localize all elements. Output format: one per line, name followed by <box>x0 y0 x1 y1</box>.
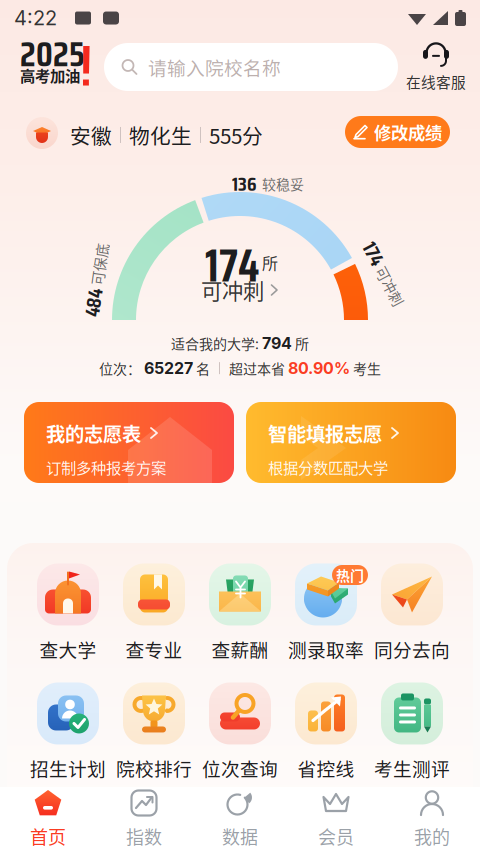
button[interactable]: 首页 <box>0 787 96 853</box>
staticText: 查大学 <box>39 635 96 662</box>
button[interactable]: 在线客服 <box>405 40 467 92</box>
button[interactable]: 省控线 <box>283 685 369 779</box>
staticText: 热门 <box>336 565 364 585</box>
staticText: 安徽 <box>70 120 112 150</box>
staticText: 考生 <box>350 358 381 378</box>
staticText: 可冲刺 <box>376 264 418 284</box>
staticText: 在线客服 <box>406 71 466 92</box>
button[interactable]: 我的 <box>384 787 480 853</box>
button[interactable]: 会员 <box>288 787 384 853</box>
staticText: 555分 <box>209 120 263 150</box>
staticText: 智能填报志愿 <box>268 419 382 447</box>
staticText: 80.90% <box>288 358 350 378</box>
staticText: 较稳妥 <box>262 174 304 194</box>
button[interactable]: 查专业 <box>111 566 197 660</box>
staticText: 位次： <box>99 358 144 378</box>
button[interactable]: 考生测评 <box>369 685 455 779</box>
button[interactable]: 招生计划 <box>25 685 111 779</box>
staticText: 查薪酬 <box>211 635 268 662</box>
button[interactable]: 指数 <box>96 787 192 853</box>
staticText: 指数 <box>126 823 162 849</box>
button[interactable]: 请输入院校名称 <box>104 43 398 91</box>
button[interactable]: 位次查询 <box>197 685 283 779</box>
staticText: 适合我的大学: <box>171 333 262 353</box>
staticText: 174 <box>349 258 372 290</box>
staticText: 院校排行 <box>116 754 192 781</box>
button[interactable]: 修改成绩 <box>345 116 450 148</box>
button[interactable]: 查薪酬 <box>197 566 283 660</box>
staticText: 所 <box>262 251 278 274</box>
staticText: 136 <box>232 168 257 199</box>
staticText: 会员 <box>318 823 354 849</box>
staticText: 请输入院校名称 <box>148 53 281 80</box>
staticText: 首页 <box>30 823 66 849</box>
staticText: 我的志愿表 <box>46 419 141 447</box>
button[interactable]: 同分去向 <box>369 566 455 660</box>
staticText: 名 <box>193 358 210 378</box>
staticText: 4:22 <box>14 6 57 30</box>
staticText: 174 <box>205 230 259 301</box>
staticText: 我的 <box>414 823 450 849</box>
staticText: 位次查询 <box>202 754 278 781</box>
staticText: 可保底 <box>92 270 134 290</box>
button[interactable]: 我的志愿表 <box>24 402 234 483</box>
staticText: 同分去向 <box>374 635 450 662</box>
button[interactable]: 智能填报志愿 <box>246 402 456 483</box>
staticText: 2025 <box>20 27 85 82</box>
staticText: 修改成绩 <box>374 119 442 145</box>
button[interactable]: 查大学 <box>25 566 111 660</box>
staticText: 物化生 <box>129 120 192 150</box>
staticText: 可冲刺 <box>201 275 264 305</box>
staticText: 高考加油 <box>20 64 80 86</box>
button[interactable]: 可冲刺 <box>140 277 340 303</box>
staticText: 65227 <box>144 358 193 378</box>
staticText: 订制多种报考方案 <box>46 456 166 478</box>
staticText: 招生计划 <box>30 754 106 781</box>
staticText: 超过本省 <box>229 358 288 378</box>
staticText: 测录取率 <box>288 635 364 662</box>
button[interactable]: 测录取率 <box>283 566 369 660</box>
staticText: 所 <box>292 333 309 353</box>
staticText: 查专业 <box>125 635 182 662</box>
staticText: 省控线 <box>297 754 354 781</box>
staticText: 794 <box>262 333 292 353</box>
button[interactable]: 数据 <box>192 787 288 853</box>
button[interactable]: 院校排行 <box>111 685 197 779</box>
staticText: 根据分数匹配大学 <box>268 456 388 478</box>
staticText: 考生测评 <box>374 754 450 781</box>
staticText: 数据 <box>222 823 258 849</box>
